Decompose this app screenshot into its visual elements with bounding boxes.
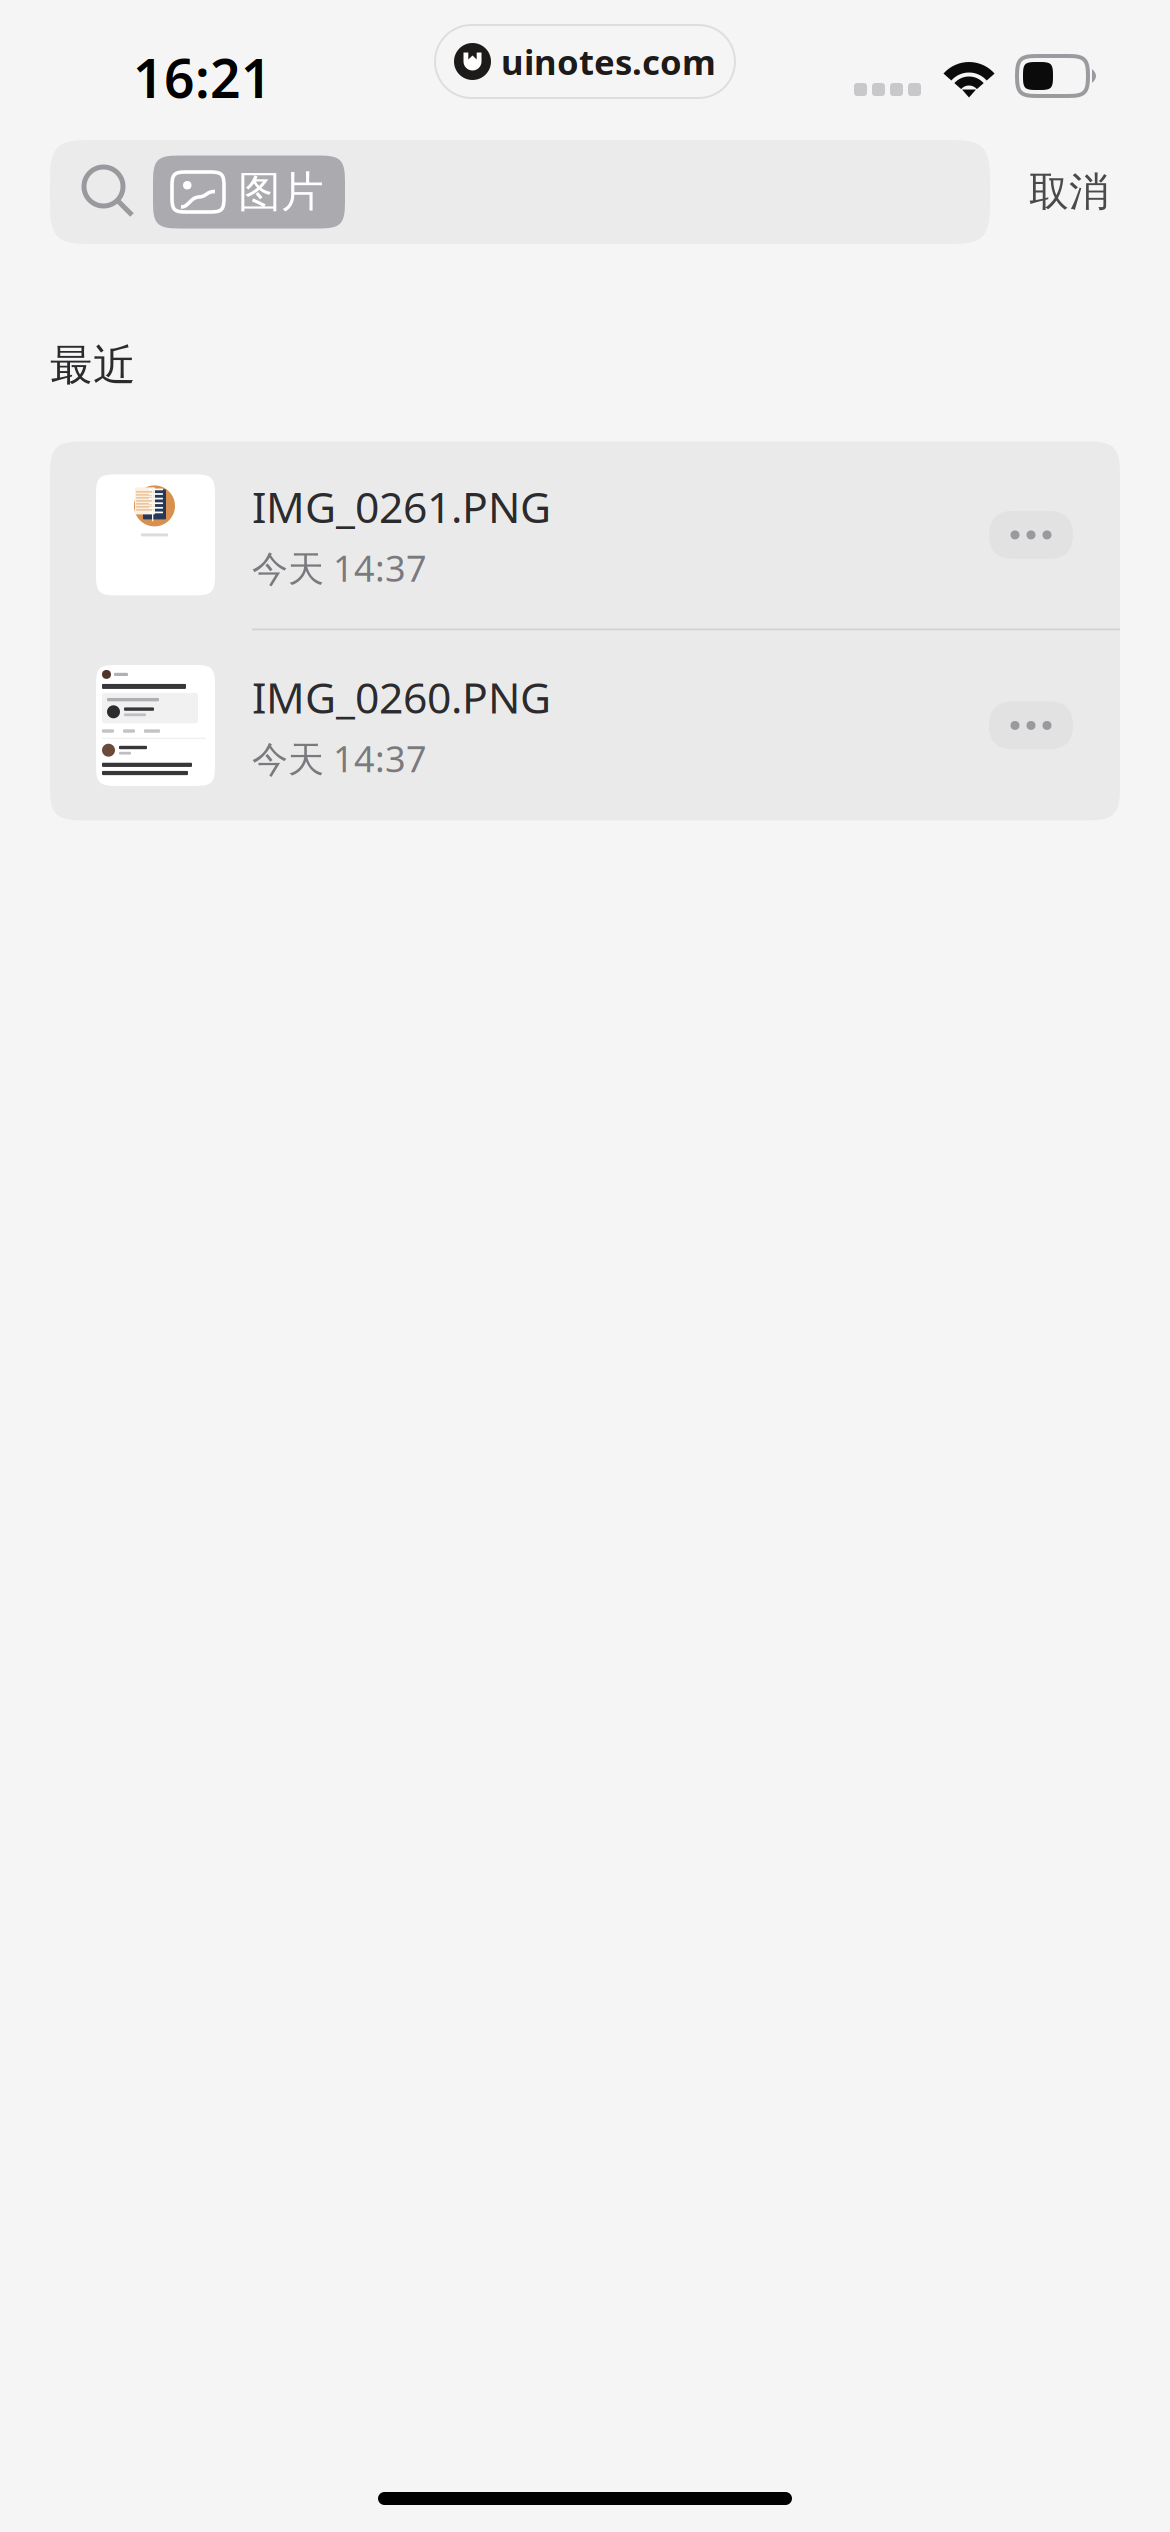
button[interactable]: 图片 xyxy=(153,155,345,228)
button[interactable]: 更多 xyxy=(989,511,1073,559)
staticText: 图片 xyxy=(238,166,324,218)
button[interactable]: IMG_0260.PNG xyxy=(50,630,1120,820)
button[interactable]: 取消 xyxy=(990,140,1148,244)
staticText: 16:21 xyxy=(133,42,272,113)
staticText: IMG_0260.PNG xyxy=(252,669,551,725)
staticText: IMG_0261.PNG xyxy=(252,478,551,535)
staticText: 今天 14:37 xyxy=(252,544,427,592)
staticText: 最近 xyxy=(50,339,136,391)
staticText: uinotes.com xyxy=(501,38,716,84)
button[interactable]: 更多 xyxy=(989,701,1073,749)
button[interactable]: IMG_0261.PNG xyxy=(50,441,1120,628)
staticText: 今天 14:37 xyxy=(252,734,427,782)
staticText: 取消 xyxy=(1029,167,1109,216)
